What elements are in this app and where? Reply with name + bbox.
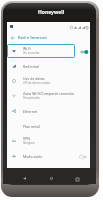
button[interactable]: Ethernet — [7, 104, 90, 119]
button[interactable]: VPN — [7, 134, 90, 149]
staticText: Red móvil — [23, 64, 40, 69]
staticText: 3 B de datos usados — [23, 81, 51, 85]
staticText: Ninguno — [23, 141, 35, 145]
button[interactable]: Modo avión — [7, 149, 90, 164]
staticText: Ethernet — [23, 109, 38, 114]
staticText: Honeywell — [38, 9, 65, 16]
button[interactable]: Home — [48, 175, 55, 182]
staticText: Uso de datos — [23, 76, 45, 81]
staticText: Modo avión — [23, 154, 43, 159]
staticText: Sin conectar — [23, 51, 40, 55]
button[interactable]: Back — [8, 33, 17, 42]
button[interactable]: Recent apps — [74, 176, 81, 183]
button[interactable]: Zona Wi-Fi/Compartir conexión — [7, 89, 90, 104]
staticText: Plan móvil — [23, 124, 40, 129]
button[interactable]: Wi-Fi — [7, 44, 90, 59]
button[interactable]: Toggle off — [78, 153, 90, 161]
button[interactable]: Toggle on — [78, 48, 90, 56]
staticText: Zona Wi-Fi/Compartir conexión — [23, 91, 75, 96]
button[interactable]: Back — [21, 175, 28, 182]
staticText: Red e Internet — [18, 35, 47, 41]
button[interactable]: Red móvil — [7, 59, 90, 74]
staticText: Desactivado — [23, 96, 40, 100]
staticText: VPN — [23, 136, 30, 141]
button[interactable]: Uso de datos — [7, 74, 90, 89]
staticText: Wi-Fi — [23, 46, 32, 51]
button[interactable]: Plan móvil — [7, 119, 90, 134]
